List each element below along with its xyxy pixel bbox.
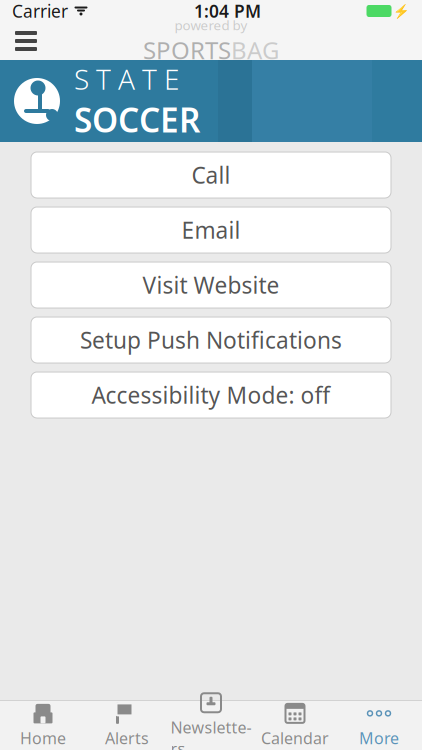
button[interactable]: Newsletters [169,701,253,750]
button[interactable]: Accessibility Mode: off [31,372,391,418]
button[interactable]: Setup Push Notifications [31,317,391,363]
button[interactable]: Menu [4,22,48,60]
staticText: More [359,727,399,749]
staticText: SOCCER [74,97,200,142]
staticText: 1:04 PM [194,0,261,22]
button[interactable]: Home [1,701,85,750]
staticText: BAG [231,34,279,66]
staticText: Newsletters [170,717,251,750]
button[interactable]: Visit Website [31,262,391,308]
staticText: SPORTS [143,34,231,66]
staticText: Carrier [12,0,68,22]
staticText: Visit Website [142,270,279,300]
staticText: Home [20,727,66,749]
staticText: Setup Push Notifications [80,325,342,355]
button[interactable]: Alerts [85,701,169,750]
staticText: Accessibility Mode: off [91,380,330,410]
staticText: S T A T E [74,60,179,97]
button[interactable]: Email [31,207,391,253]
button[interactable]: Calendar [253,701,337,750]
button[interactable]: More [337,701,421,750]
staticText: Call [191,160,230,190]
staticText: powered by [174,16,247,34]
staticText: Calendar [261,727,329,749]
staticText: ⚡ [393,3,410,19]
staticText: Email [181,215,240,245]
button[interactable]: Call [31,152,391,198]
staticText: Alerts [105,727,149,749]
